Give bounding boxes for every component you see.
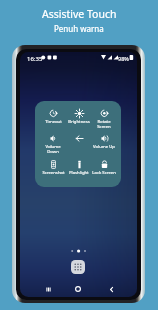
staticText: Volume Down	[45, 143, 61, 154]
button[interactable]: Apps	[71, 260, 85, 274]
staticText: Screenshot	[42, 169, 65, 175]
button[interactable]: Lock Screen	[90, 157, 118, 181]
staticText: Rotate Screen	[97, 118, 111, 129]
button[interactable]: Recents	[40, 281, 56, 297]
button[interactable]: Screenshot	[39, 157, 67, 181]
staticText: Brightness	[68, 118, 90, 124]
staticText: Penuh warna	[54, 23, 104, 34]
staticText: Volume Up	[93, 143, 115, 149]
button[interactable]: Home	[70, 281, 86, 297]
button[interactable]: Back	[103, 281, 119, 297]
button[interactable]: Brightness	[65, 106, 93, 130]
button[interactable]: Flashlight	[65, 157, 93, 181]
button[interactable]: Volume Down	[39, 131, 67, 155]
button[interactable]: Rotate Screen	[90, 106, 118, 130]
staticText: Timeout	[45, 118, 62, 124]
staticText: Flashlight	[69, 169, 89, 175]
staticText: Lock Screen	[92, 169, 116, 175]
staticText: 98%	[118, 55, 129, 62]
staticText: Assistive Touch	[42, 7, 117, 21]
staticText: 16:35	[27, 55, 43, 63]
button[interactable]: Back	[65, 131, 93, 155]
button[interactable]: Volume Up	[90, 131, 118, 155]
button[interactable]: Timeout	[39, 106, 67, 130]
